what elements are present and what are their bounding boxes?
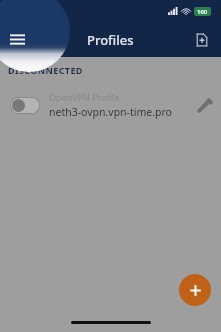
button[interactable]: Add profile [179,274,211,306]
button[interactable]: Connect profile [0,85,221,125]
staticText: DISCONNECTED [8,64,83,76]
staticText: 100 [197,8,208,16]
button[interactable]: Import profile [186,24,218,56]
staticText: neth3-ovpn.vpn-time.pro [49,105,172,119]
button[interactable]: Edit profile [187,88,221,122]
button[interactable]: Open navigation menu [1,23,33,55]
staticText: Profiles [87,31,134,49]
button[interactable]: Connect profile [10,97,40,114]
staticText: OpenVPN Profile [49,91,120,103]
